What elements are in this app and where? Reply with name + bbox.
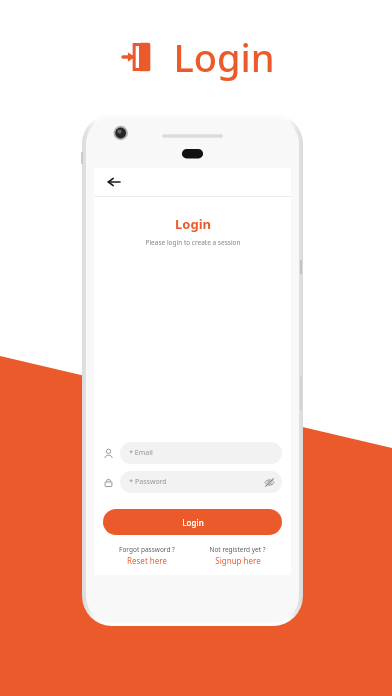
staticText: * Email xyxy=(129,448,153,458)
button[interactable]: Login xyxy=(103,509,282,535)
button[interactable]: Not registerd yet ? xyxy=(192,545,283,566)
staticText: Forgot password ? xyxy=(119,545,175,554)
button[interactable]: Forgot password ? xyxy=(102,545,192,566)
staticText: Signup here xyxy=(215,555,261,566)
staticText: Please login to create a session xyxy=(145,238,241,247)
staticText: Reset here xyxy=(127,555,167,566)
staticText: Not registerd yet ? xyxy=(209,545,266,554)
staticText: * Password xyxy=(129,477,167,487)
button[interactable]: * Email xyxy=(103,442,282,464)
button[interactable]: Show password xyxy=(264,477,275,488)
staticText: Login xyxy=(182,517,204,528)
button[interactable]: Back xyxy=(104,172,124,192)
staticText: Login xyxy=(175,215,211,233)
button[interactable]: * Password xyxy=(103,471,282,493)
staticText: Login xyxy=(173,31,275,83)
